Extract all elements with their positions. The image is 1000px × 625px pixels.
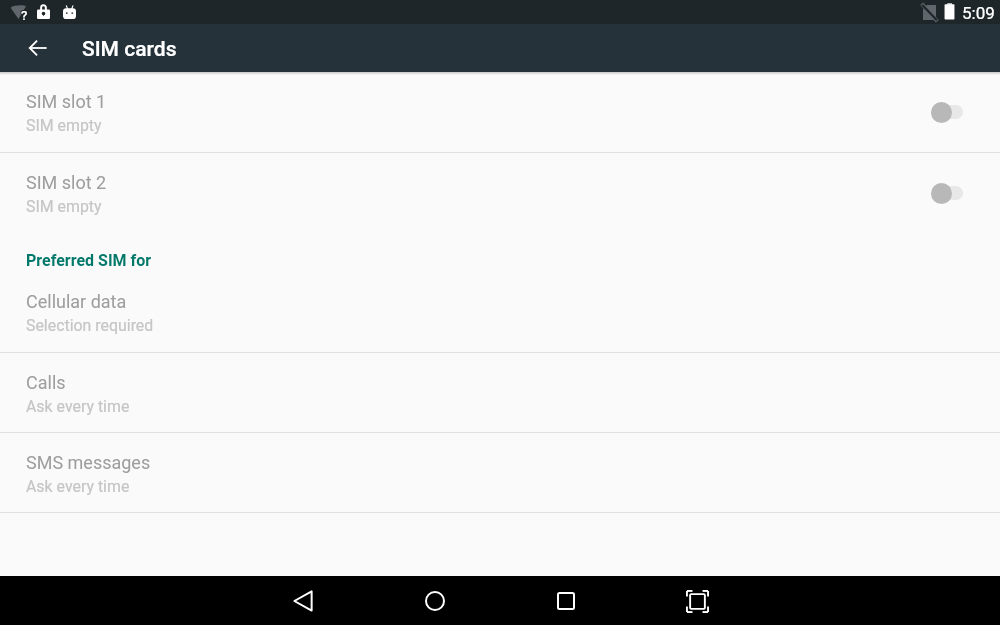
button[interactable]: SIM slot 2	[0, 153, 1000, 232]
staticText: ?	[21, 8, 28, 22]
staticText: ?	[22, 8, 29, 22]
staticText: SIM empty	[26, 116, 102, 135]
staticText: ?	[20, 8, 27, 22]
staticText: Selection required	[26, 316, 154, 335]
staticText: Ask every time	[26, 477, 130, 496]
button[interactable]: Navigate up	[22, 32, 54, 64]
button[interactable]: SIM slot 1	[0, 72, 1000, 152]
staticText: ?	[21, 8, 28, 22]
staticText: SIM empty	[26, 197, 102, 216]
staticText: Cellular data	[26, 291, 127, 312]
button[interactable]: Back	[279, 577, 327, 625]
button[interactable]: Cellular data	[0, 272, 1000, 352]
staticText: ?	[20, 9, 27, 23]
staticText: Calls	[26, 372, 66, 393]
staticText: SIM slot 2	[26, 172, 107, 193]
staticText: ?	[20, 7, 27, 21]
staticText: ?	[21, 9, 28, 23]
staticText: 5:09	[962, 3, 995, 23]
staticText: SIM slot 1	[26, 91, 107, 112]
button[interactable]: Home	[411, 577, 459, 625]
staticText: ?	[22, 9, 29, 23]
button[interactable]: Screenshot	[673, 577, 721, 625]
staticText: Preferred SIM for	[26, 251, 152, 270]
staticText: ?	[22, 7, 29, 21]
button[interactable]: SMS messages	[0, 433, 1000, 512]
button[interactable]: Recent apps	[542, 577, 590, 625]
staticText: ?	[21, 7, 28, 21]
staticText: SIM cards	[82, 37, 177, 62]
staticText: Ask every time	[26, 397, 130, 416]
button[interactable]: Calls	[0, 353, 1000, 432]
staticText: SMS messages	[26, 452, 151, 473]
